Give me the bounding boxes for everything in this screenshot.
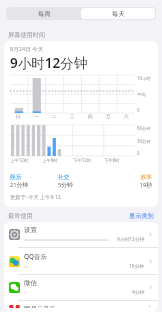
staticText: 屏幕使用时间 (8, 31, 46, 39)
staticText: 60分钟 (137, 125, 151, 131)
staticText: 最常使用 (8, 212, 33, 220)
staticText: 上午6时 (42, 157, 58, 163)
staticText: 10小时 (137, 75, 151, 81)
staticText: 9小时12分钟 (10, 54, 88, 72)
staticText: 下午12时 (73, 157, 92, 163)
button[interactable]: 每天 (81, 8, 155, 19)
staticText: 0 (137, 107, 140, 113)
staticText: 三 (70, 114, 75, 120)
staticText: QQ音乐 (24, 252, 47, 261)
staticText: 30分钟 (137, 138, 151, 144)
staticText: 下午6时 (104, 157, 120, 163)
button[interactable]: 显示类别 (129, 212, 154, 220)
staticText: 网易云音乐 (24, 305, 56, 308)
staticText: 平均 (137, 92, 146, 98)
staticText: 每周 (38, 10, 51, 18)
staticText: 10分钟 (129, 263, 145, 270)
staticText: 19秒 (105, 181, 152, 189)
staticText: 社交 (58, 173, 105, 180)
staticText: 上午12时 (10, 157, 29, 163)
button[interactable]: 娱乐 (10, 173, 58, 189)
button[interactable]: 网易云音乐 (4, 301, 158, 312)
staticText: 更新于: 今天 上午9:12 (10, 193, 61, 200)
button[interactable]: QQ音乐 (4, 248, 158, 275)
staticText: 效率 (105, 173, 152, 180)
staticText: 一 (34, 114, 39, 120)
staticText: 4分钟 (132, 289, 145, 296)
staticText: 六 (124, 114, 129, 120)
staticText: 二 (52, 114, 57, 120)
staticText: 每天 (112, 10, 125, 18)
staticText: 21分钟 (10, 181, 58, 189)
button[interactable]: 社交 (58, 173, 105, 189)
button[interactable]: 设置 (4, 222, 158, 248)
staticText: 9小时12分钟 (117, 236, 145, 243)
staticText: 娱乐 (10, 173, 58, 180)
staticText: 0 (137, 150, 140, 156)
staticText: 5分钟 (58, 181, 105, 189)
staticText: 日 (16, 114, 21, 120)
button[interactable]: 微信 (4, 275, 158, 301)
button[interactable]: 效率 (105, 173, 152, 189)
staticText: 五 (106, 114, 111, 120)
staticText: 四 (88, 114, 93, 120)
staticText: 设置 (24, 226, 37, 234)
staticText: 8月24日 今天 (10, 45, 44, 53)
staticText: 显示类别 (129, 212, 154, 220)
button[interactable]: 每周 (7, 8, 81, 19)
staticText: 微信 (24, 279, 37, 287)
